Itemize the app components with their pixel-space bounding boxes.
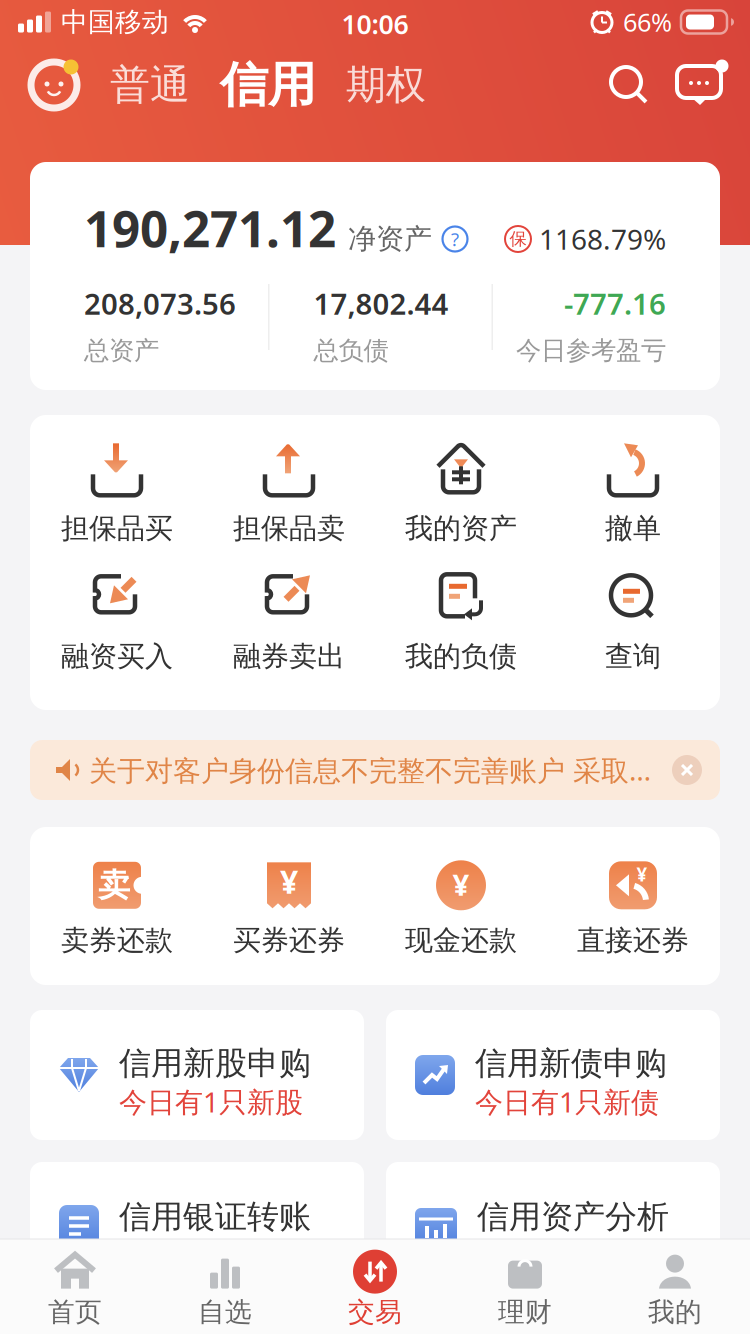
button[interactable]: ¥ xyxy=(547,860,719,959)
staticText: ¥ xyxy=(636,862,647,887)
staticText: 信用银证转账 xyxy=(119,1197,311,1236)
button[interactable]: 净资产说明 xyxy=(442,226,468,252)
staticText: 信用新股申购 xyxy=(119,1044,311,1083)
button[interactable]: 信用新股申购 xyxy=(30,1010,364,1140)
staticText: 17,802.44 xyxy=(313,284,448,323)
button[interactable]: 融券卖出 xyxy=(203,570,375,674)
button[interactable]: 信用资产分析 xyxy=(386,1162,720,1292)
staticText: 总资产 xyxy=(84,335,159,366)
staticText: 信用新债申购 xyxy=(475,1044,667,1083)
button[interactable]: 交易 xyxy=(300,1239,450,1334)
staticText: 1168.79% xyxy=(539,220,666,258)
staticText: 撤单 xyxy=(605,511,661,546)
staticText: 现金还款 xyxy=(405,923,517,958)
button[interactable]: 我的资产 xyxy=(375,442,547,546)
staticText: 信用资产分析 xyxy=(477,1197,669,1236)
staticText: 查询 xyxy=(605,639,661,674)
button[interactable]: ¥ xyxy=(375,860,547,959)
button[interactable]: 撤单 xyxy=(547,442,719,546)
staticText: 我的 xyxy=(648,1296,702,1328)
button[interactable]: 我的 xyxy=(600,1239,750,1334)
staticText: 今日有1只新债 xyxy=(475,1083,659,1120)
button[interactable]: 关闭公告 xyxy=(672,755,702,785)
button[interactable]: 信用银证转账 xyxy=(30,1162,364,1292)
staticText: 交易 xyxy=(348,1296,402,1328)
staticText: 中国移动 xyxy=(61,6,169,38)
button[interactable]: 查询 xyxy=(547,570,719,674)
button[interactable]: 消息 xyxy=(676,62,728,108)
button[interactable]: 融资买入 xyxy=(31,570,203,674)
staticText: 收益走势 一目了然 xyxy=(477,1236,709,1271)
button[interactable]: ¥ xyxy=(203,860,375,959)
staticText: 直接还券 xyxy=(577,923,689,958)
staticText: 卖 xyxy=(98,866,130,905)
button[interactable]: 期权 xyxy=(346,60,426,109)
staticText: 担保品买 xyxy=(61,511,173,546)
staticText: 买券还券 xyxy=(233,923,345,958)
staticText: 实时划转 安全便捷 xyxy=(119,1236,351,1271)
staticText: -777.16 xyxy=(564,284,666,323)
button[interactable]: 搜索 xyxy=(608,64,650,106)
button[interactable]: 信用新债申购 xyxy=(386,1010,720,1140)
staticText: 关于对客户身份信息不完整不完善账户 采取… xyxy=(89,751,651,789)
staticText: ¥ xyxy=(452,865,469,904)
staticText: 净资产 xyxy=(348,222,432,256)
staticText: 卖券还款 xyxy=(61,923,173,958)
button[interactable]: 担保品买 xyxy=(31,442,203,546)
button[interactable]: 自选 xyxy=(150,1239,300,1334)
button[interactable]: 卖 xyxy=(31,860,203,959)
staticText: 首页 xyxy=(48,1296,102,1328)
staticText: 保 xyxy=(509,228,526,250)
staticText: 10:06 xyxy=(341,6,408,42)
staticText: 普通 xyxy=(110,60,190,109)
button[interactable]: 首页 xyxy=(0,1239,150,1334)
staticText: 融资买入 xyxy=(61,639,173,674)
staticText: 我的资产 xyxy=(405,511,517,546)
staticText: ? xyxy=(451,227,459,251)
staticText: 今日参考盈亏 xyxy=(516,335,666,366)
staticText: 总负债 xyxy=(313,335,388,366)
staticText: 理财 xyxy=(498,1296,552,1328)
staticText: 66% xyxy=(623,5,672,39)
staticText: 担保品卖 xyxy=(233,511,345,546)
staticText: 自选 xyxy=(198,1296,252,1328)
staticText: ¥ xyxy=(280,860,298,903)
staticText: 信用 xyxy=(220,55,316,114)
button[interactable]: 理财 xyxy=(450,1239,600,1334)
staticText: 期权 xyxy=(346,60,426,109)
button[interactable]: 普通 xyxy=(110,60,190,109)
staticText: 208,073.56 xyxy=(84,284,236,323)
staticText: 今日有1只新股 xyxy=(119,1083,303,1120)
button[interactable]: 信用 xyxy=(220,55,316,114)
staticText: 190,271.12 xyxy=(84,195,336,261)
staticText: 融券卖出 xyxy=(233,639,345,674)
staticText: 我的负债 xyxy=(405,639,517,674)
button[interactable]: 担保品卖 xyxy=(203,442,375,546)
button[interactable]: 我的负债 xyxy=(375,570,547,674)
